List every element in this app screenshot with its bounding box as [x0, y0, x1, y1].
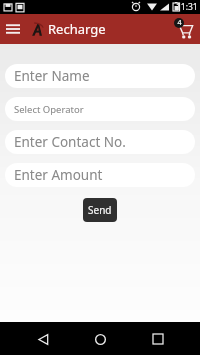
staticText: Recharge	[48, 20, 106, 38]
button[interactable]: Enter Contact No.	[5, 130, 195, 154]
staticText: Select Operator	[14, 103, 84, 116]
button[interactable]: Cart, 4 items	[172, 17, 196, 41]
button[interactable]: Select Operator	[5, 97, 195, 121]
staticText: Enter Amount	[14, 166, 103, 184]
button[interactable]: Enter Amount	[5, 163, 195, 187]
button[interactable]: Enter Name	[5, 64, 195, 88]
button[interactable]: Home	[85, 324, 115, 354]
staticText: Enter Contact No.	[14, 133, 126, 151]
button[interactable]: Open navigation menu	[4, 20, 22, 38]
staticText: 11:31	[176, 1, 198, 13]
staticText: Send	[88, 203, 112, 217]
button[interactable]: Back	[28, 324, 58, 354]
staticText: 4	[177, 18, 182, 28]
button[interactable]: Send	[83, 198, 117, 222]
button[interactable]: Recent apps	[143, 324, 173, 354]
staticText: Enter Name	[14, 67, 90, 85]
